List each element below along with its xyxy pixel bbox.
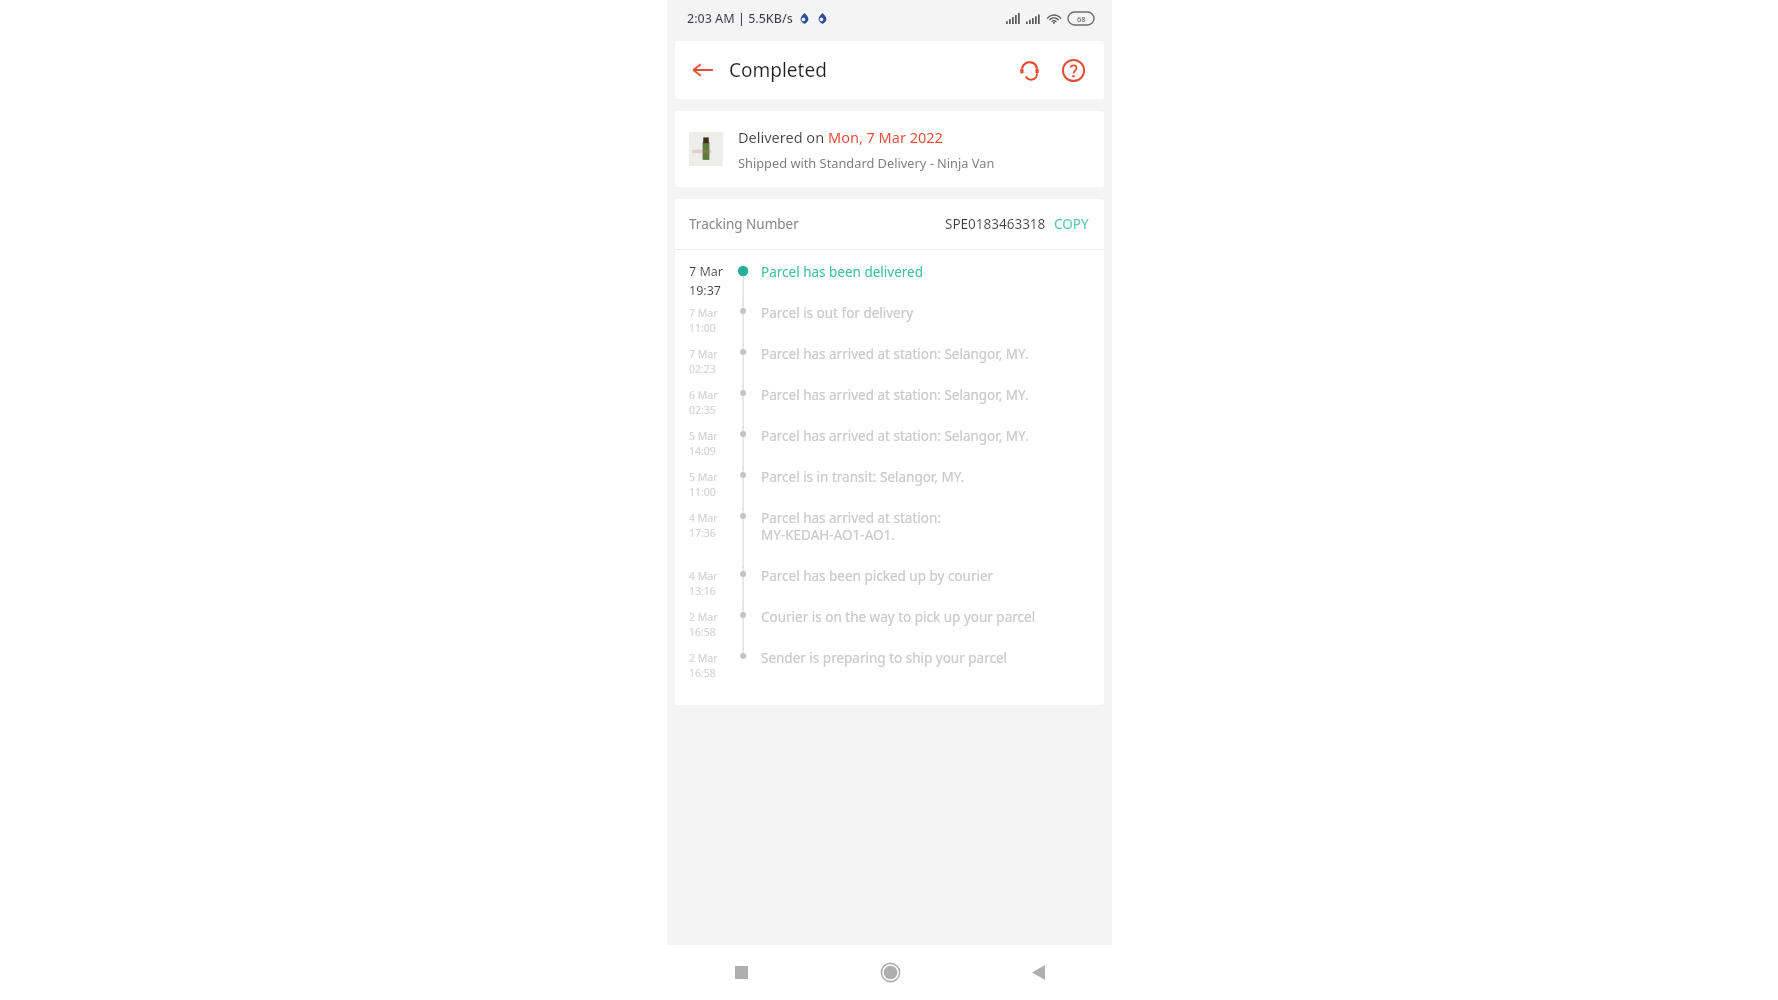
staticText: 02:23 — [689, 362, 716, 376]
staticText: Courier is on the way to pick up your pa… — [761, 608, 1036, 626]
staticText: Parcel has arrived at station: Selangor,… — [761, 427, 1029, 445]
button[interactable]: Customer support — [1008, 49, 1050, 91]
staticText: COPY — [1054, 215, 1089, 233]
button[interactable]: Home — [816, 945, 964, 1000]
staticText: 14:09 — [689, 444, 716, 458]
staticText: SPE0183463318 — [945, 215, 1046, 233]
button[interactable]: 4 Mar — [675, 566, 1104, 607]
staticText: 2 Mar — [689, 651, 718, 665]
button[interactable]: Recents — [667, 945, 816, 1000]
staticText: Shipped with Standard Delivery - Ninja V… — [738, 154, 995, 171]
button[interactable]: 4 Mar — [675, 508, 1104, 566]
staticText: 2:03 AM | 5.5KB/s — [687, 10, 793, 27]
button[interactable]: Help — [1052, 49, 1094, 91]
button[interactable]: 2 Mar — [675, 648, 1104, 689]
staticText: Parcel has been delivered — [761, 263, 923, 281]
staticText: Parcel has arrived at station: Selangor,… — [761, 386, 1029, 404]
staticText: 7 Mar — [689, 263, 723, 280]
staticText: 6 Mar — [689, 388, 718, 402]
button[interactable]: Delivered on — [675, 111, 1104, 187]
staticText: Parcel has arrived at station: Selangor,… — [761, 345, 1029, 363]
button[interactable]: 5 Mar — [675, 467, 1104, 508]
staticText: 68 — [1077, 14, 1086, 24]
button[interactable]: Back — [964, 945, 1112, 1000]
staticText: 4 Mar — [689, 511, 718, 525]
staticText: 5 Mar — [689, 429, 718, 443]
staticText: Parcel has been picked up by courier — [761, 567, 994, 585]
staticText: Parcel has arrived at station: MY-KEDAH-… — [761, 509, 941, 544]
staticText: 16:58 — [689, 625, 716, 639]
staticText: 17:36 — [689, 526, 716, 540]
staticText: 11:00 — [689, 321, 716, 335]
staticText: Parcel is out for delivery — [761, 304, 914, 322]
button[interactable]: COPY — [1053, 211, 1090, 237]
staticText: 13:16 — [689, 584, 716, 598]
staticText: 2 Mar — [689, 610, 718, 624]
staticText: 16:58 — [689, 666, 716, 680]
button[interactable]: 7 Mar — [675, 303, 1104, 344]
staticText: 11:00 — [689, 485, 716, 499]
button[interactable]: 5 Mar — [675, 426, 1104, 467]
button[interactable]: 7 Mar — [675, 344, 1104, 385]
staticText: 19:37 — [689, 282, 721, 299]
staticText: Parcel is in transit: Selangor, MY. — [761, 468, 965, 486]
button[interactable]: 6 Mar — [675, 385, 1104, 426]
staticText: 7 Mar — [689, 306, 718, 320]
staticText: Tracking Number — [689, 215, 799, 233]
staticText: Delivered on — [738, 127, 828, 147]
staticText: 02:35 — [689, 403, 716, 417]
button[interactable]: 7 Mar — [675, 262, 1104, 303]
staticText: 5 Mar — [689, 470, 718, 484]
staticText: Mon, 7 Mar 2022 — [828, 127, 943, 147]
staticText: 7 Mar — [689, 347, 718, 361]
staticText: Completed — [729, 57, 827, 83]
staticText: 4 Mar — [689, 569, 718, 583]
button[interactable]: Back — [683, 50, 723, 90]
staticText: Sender is preparing to ship your parcel — [761, 649, 1008, 667]
button[interactable]: 2 Mar — [675, 607, 1104, 648]
